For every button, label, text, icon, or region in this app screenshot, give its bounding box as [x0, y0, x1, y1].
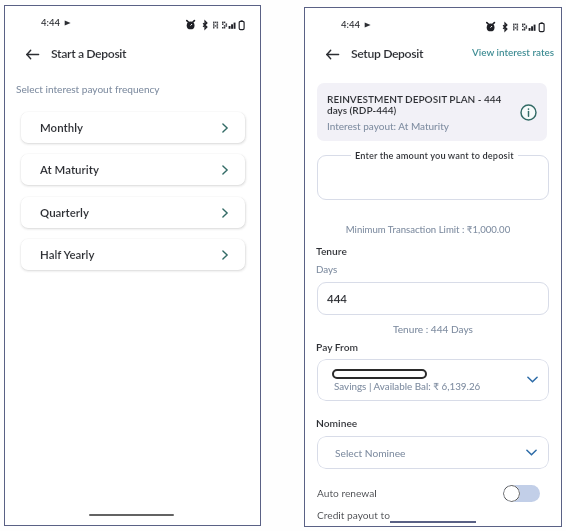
- staticText: Half Yearly: [40, 248, 95, 262]
- staticText: Savings | Available Bal: ₹ 6,139.26: [334, 380, 481, 392]
- staticText: At Maturity: [40, 163, 99, 177]
- staticText: Tenure: [316, 245, 347, 257]
- staticText: Days: [316, 263, 338, 275]
- staticText: View interest rates: [472, 46, 555, 58]
- staticText: Select Nominee: [335, 447, 406, 459]
- button[interactable]: Quarterly: [21, 197, 245, 228]
- staticText: Tenure : 444 Days: [304, 323, 562, 335]
- button[interactable]: Auto renewal toggle: [503, 485, 540, 502]
- button[interactable]: Back: [322, 44, 342, 64]
- button[interactable]: Savings | Available Bal: ₹ 6,139.26: [317, 359, 549, 401]
- staticText: REINVESTMENT DEPOSIT PLAN - 444 days (RD…: [327, 93, 511, 117]
- button[interactable]: Monthly: [21, 112, 245, 143]
- staticText: Auto renewal: [317, 487, 377, 499]
- staticText: Credit payout to: [317, 509, 390, 521]
- staticText: 4:44: [41, 17, 60, 28]
- staticText: Interest payout: At Maturity: [327, 120, 449, 132]
- button[interactable]: Select Nominee: [317, 436, 549, 469]
- staticText: Setup Deposit: [351, 46, 424, 61]
- button[interactable]: Half Yearly: [21, 239, 245, 270]
- staticText: Nominee: [316, 417, 358, 429]
- staticText: Enter the amount you want to deposit: [355, 150, 514, 161]
- staticText: Minimum Transaction Limit : ₹1,000.00: [299, 224, 557, 236]
- staticText: Select interest payout frequency: [16, 83, 160, 95]
- button[interactable]: Plan information: [520, 104, 537, 121]
- button[interactable]: At Maturity: [21, 154, 245, 185]
- staticText: Monthly: [40, 121, 83, 135]
- staticText: Start a Deposit: [51, 46, 127, 61]
- staticText: Quarterly: [40, 206, 89, 220]
- button[interactable]: View interest rates: [472, 46, 555, 58]
- staticText: 4:44: [341, 19, 360, 30]
- staticText: Pay From: [316, 341, 359, 353]
- staticText: 444: [327, 292, 348, 306]
- button[interactable]: Back: [22, 44, 42, 64]
